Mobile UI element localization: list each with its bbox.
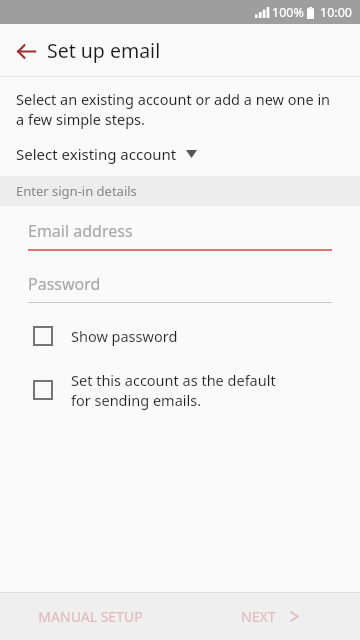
button[interactable]: Select existing account [0,142,213,170]
staticText: Password [28,273,101,295]
button[interactable]: Email address [28,220,332,251]
button[interactable]: Set this account as the default for send… [0,361,360,419]
staticText: Show password [71,326,178,346]
staticText: MANUAL SETUP [38,607,143,626]
button[interactable]: Password [28,273,332,303]
staticText: 100% [272,4,304,21]
staticText: Set this account as the default for send… [71,370,276,410]
button[interactable]: NEXT [180,593,360,640]
button[interactable]: MANUAL SETUP [0,593,180,640]
staticText: Set up email [47,37,161,64]
staticText: Select existing account [16,144,177,164]
staticText: Select an existing account or add a new … [16,89,340,130]
button[interactable]: Show password [0,317,360,355]
staticText: NEXT [241,607,276,626]
button[interactable]: Back [6,31,46,71]
staticText: 10:00 [320,4,352,21]
staticText: Enter sign-in details [16,182,137,200]
staticText: Email address [28,220,133,242]
